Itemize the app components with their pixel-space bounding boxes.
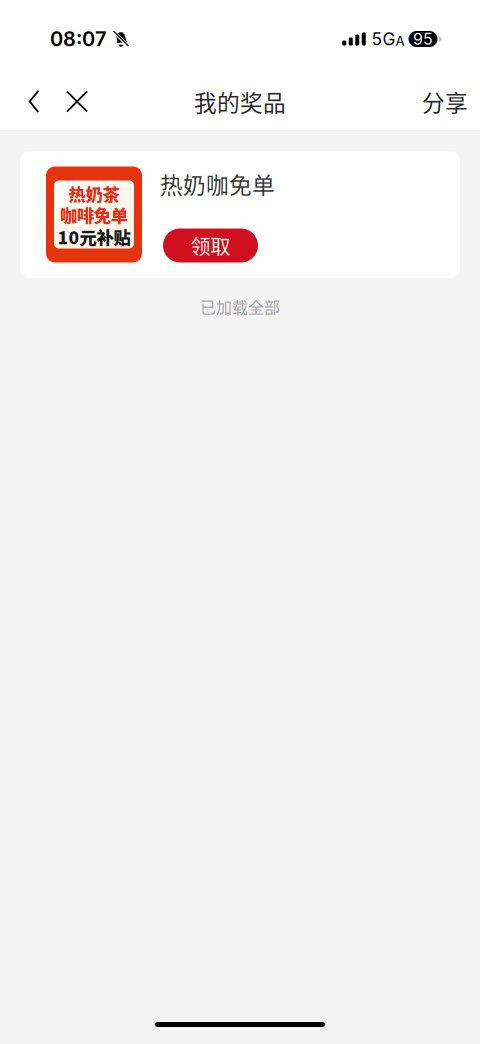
staticText: 领取 (190, 231, 230, 260)
staticText: 10元补贴 (56, 223, 132, 250)
button[interactable]: Back (13, 75, 55, 127)
staticText: 已加载全部 (200, 295, 280, 318)
staticText: 咖啡免单 (60, 202, 128, 227)
button[interactable]: 分享 (422, 75, 468, 127)
staticText: 分享 (422, 85, 468, 118)
button[interactable]: 领取 (160, 228, 258, 262)
staticText: 我的奖品 (194, 85, 286, 118)
staticText: 95 (413, 29, 433, 49)
staticText: A (395, 33, 404, 49)
button[interactable]: Close (55, 75, 99, 127)
staticText: 热奶茶 (68, 181, 119, 206)
staticText: 08:07 (50, 27, 107, 51)
staticText: 热奶咖免单 (160, 167, 275, 200)
staticText: 5G (371, 28, 395, 49)
staticText: 10元补贴 (57, 224, 130, 249)
